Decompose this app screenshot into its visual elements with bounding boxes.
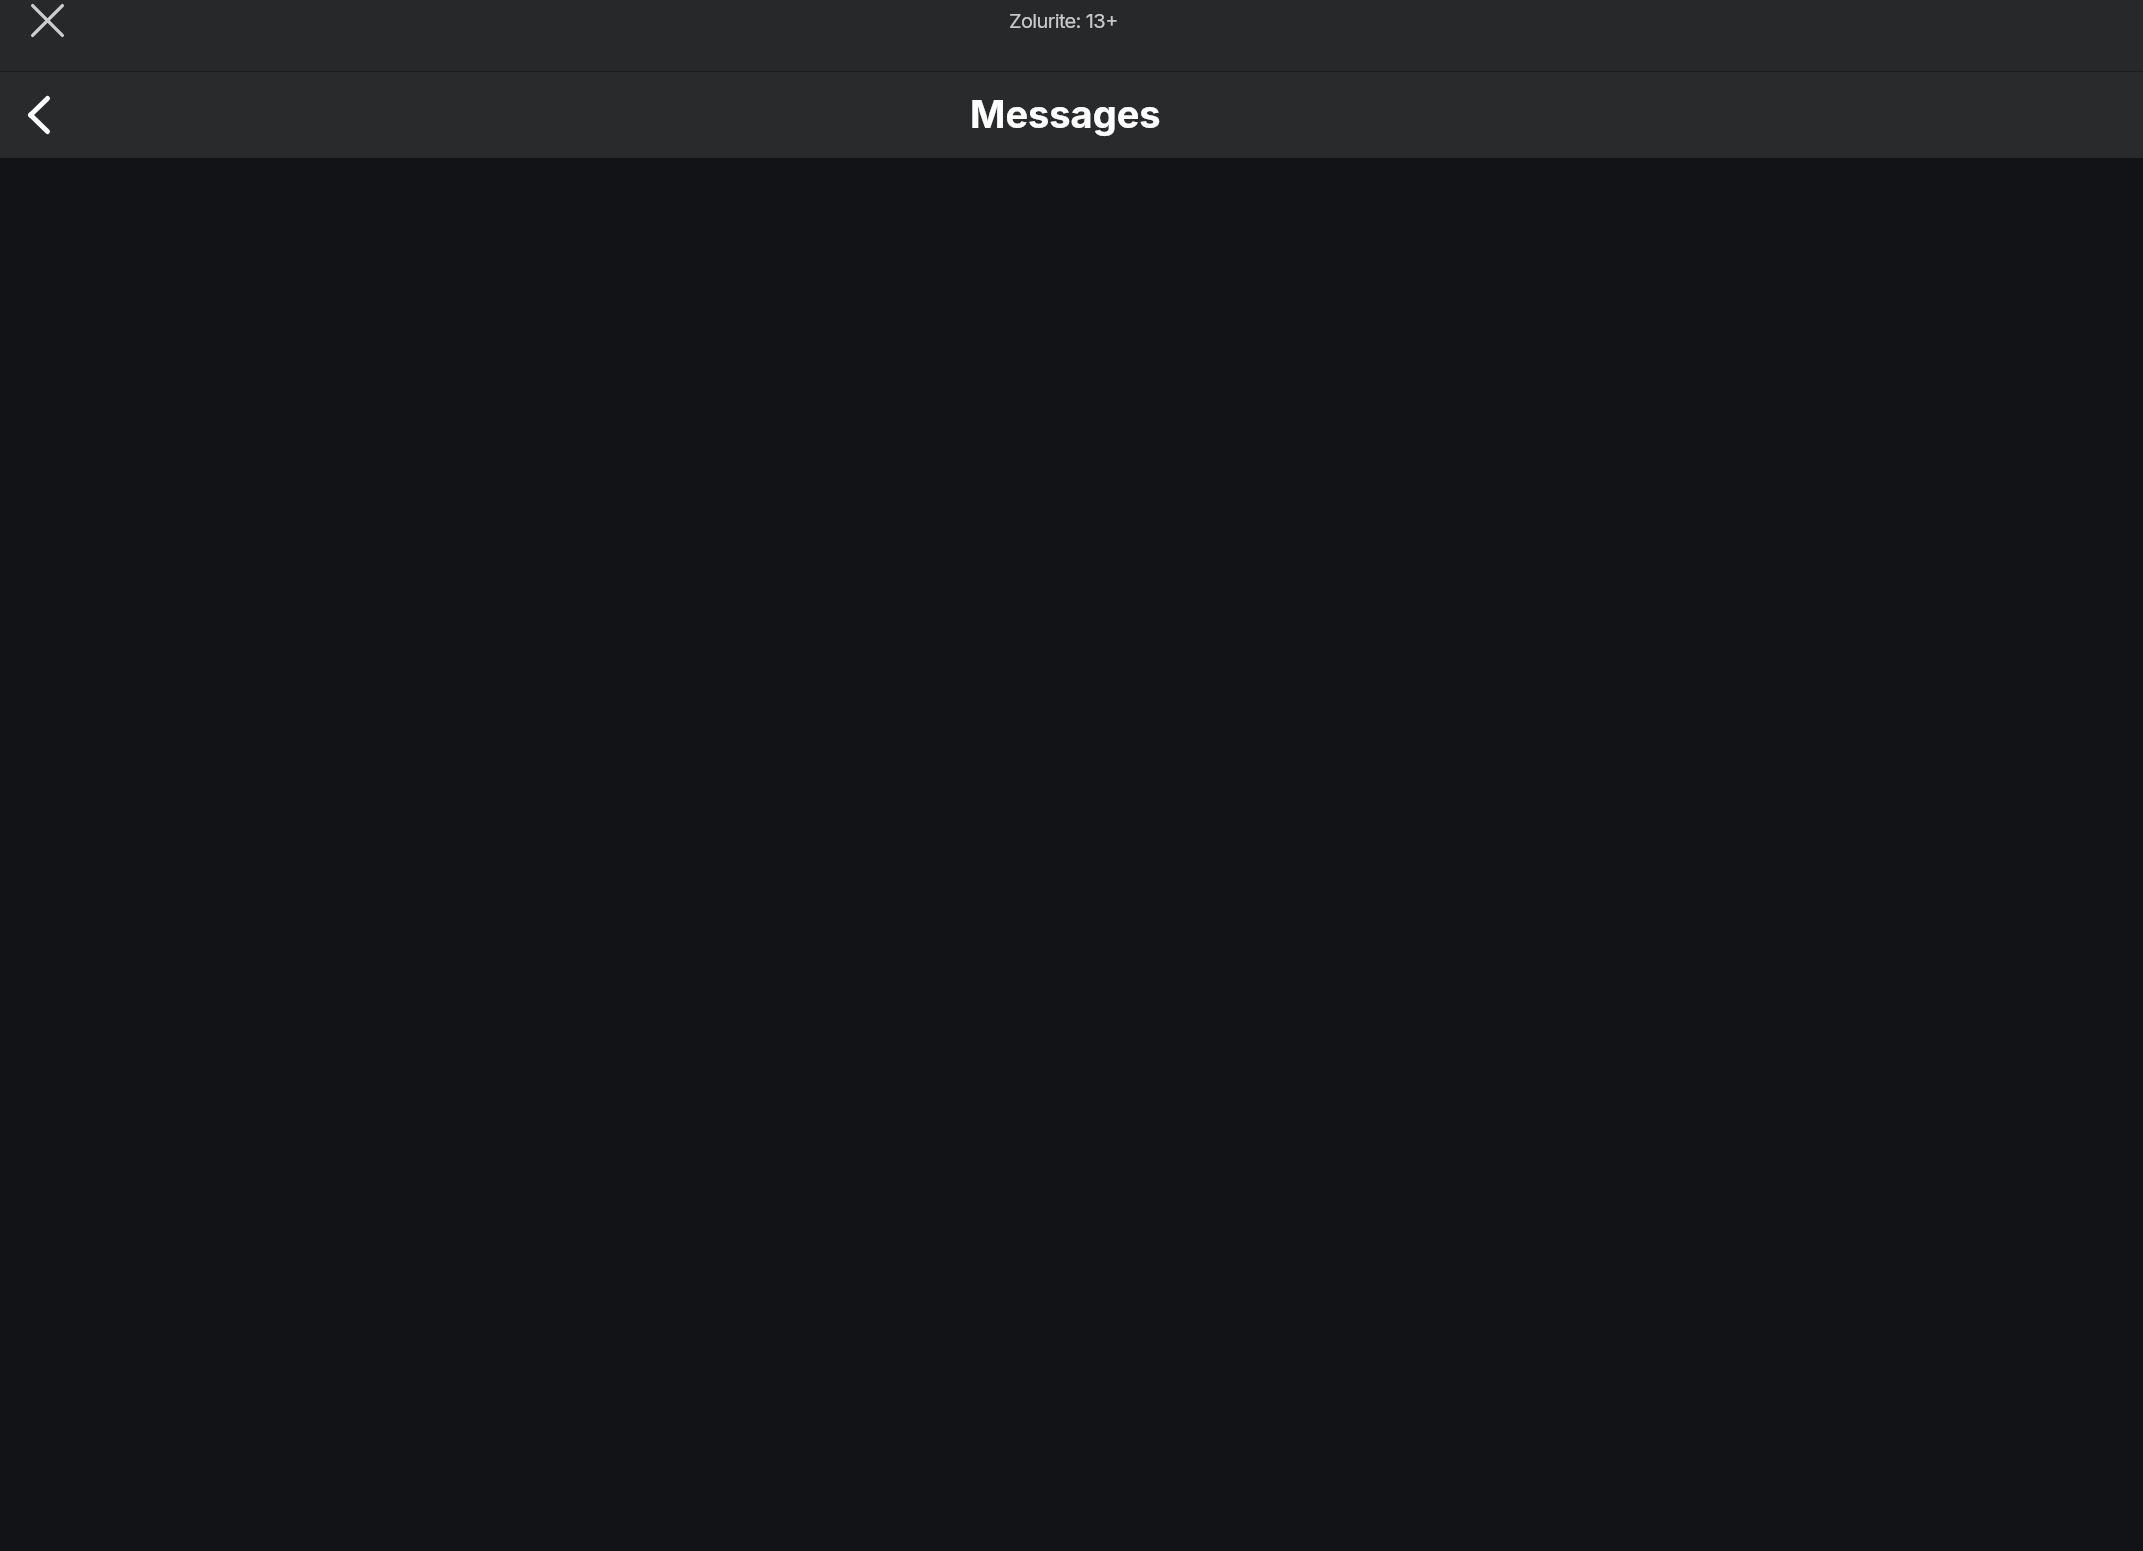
staticText: Messages bbox=[970, 91, 1161, 137]
staticText: Zolurite: 13+ bbox=[1009, 9, 1118, 33]
button[interactable]: Close bbox=[0, 0, 94, 41]
button[interactable]: Back bbox=[0, 72, 78, 158]
